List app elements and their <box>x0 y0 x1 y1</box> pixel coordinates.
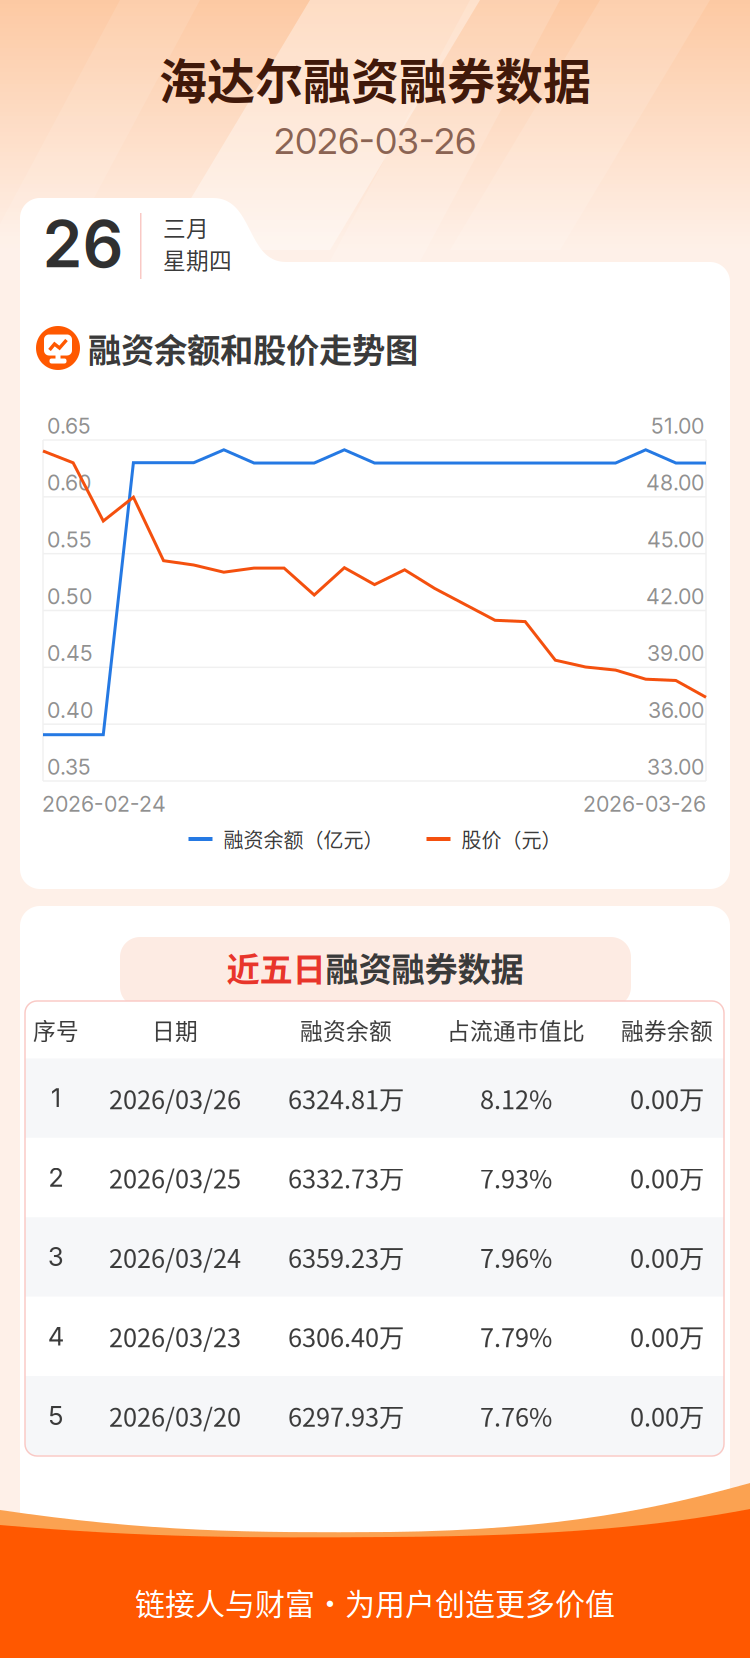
staticText: 0.35 <box>47 754 91 780</box>
staticText: 2026-02-24 <box>42 791 166 817</box>
staticText: 4 <box>48 1321 64 1352</box>
staticText: 6332.73万 <box>288 1159 404 1196</box>
staticText: 3 <box>48 1242 64 1272</box>
staticText: 占流通市值比 <box>447 1013 585 1046</box>
staticText: 26 <box>42 205 123 283</box>
staticText: 39.00 <box>647 640 704 666</box>
staticText: 0.00万 <box>630 1239 704 1275</box>
staticText: 5 <box>48 1400 63 1431</box>
staticText: 33.00 <box>647 754 704 780</box>
staticText: 0.00万 <box>630 1080 704 1116</box>
staticText: 2026/03/25 <box>109 1159 241 1196</box>
staticText: 股价（元） <box>461 824 561 853</box>
staticText: 6297.93万 <box>288 1397 404 1434</box>
staticText: 融资余额 <box>300 1013 392 1046</box>
staticText: 8.12% <box>480 1080 552 1116</box>
staticText: 0.50 <box>47 584 92 609</box>
staticText: 6306.40万 <box>288 1318 404 1355</box>
staticText: 42.00 <box>646 584 704 609</box>
staticText: 三月 <box>163 211 209 243</box>
staticText: 6359.23万 <box>288 1239 404 1275</box>
staticText: 2 <box>48 1162 63 1193</box>
staticText: 0.00万 <box>630 1397 704 1434</box>
staticText: 45.00 <box>647 527 704 553</box>
staticText: 0.65 <box>47 413 91 439</box>
staticText: 0.40 <box>47 697 93 723</box>
staticText: 近五日 <box>226 943 325 991</box>
staticText: 0.45 <box>47 640 93 666</box>
staticText: 2026/03/20 <box>109 1397 241 1434</box>
staticText: 1 <box>51 1083 61 1113</box>
staticText: 融资余额（亿元） <box>223 824 383 853</box>
staticText: 0.00万 <box>630 1159 704 1196</box>
staticText: 链接人与财富·为用户创造更多价值 <box>135 1580 615 1624</box>
staticText: 2026/03/24 <box>109 1239 241 1275</box>
staticText: 0.60 <box>47 470 91 496</box>
staticText: 融券余额 <box>621 1013 713 1046</box>
staticText: 2026/03/23 <box>109 1318 241 1355</box>
staticText: 36.00 <box>648 697 704 723</box>
staticText: 海达尔融资融券数据 <box>159 43 591 113</box>
staticText: 7.93% <box>480 1159 552 1196</box>
staticText: 48.00 <box>646 470 704 496</box>
staticText: 2026-03-26 <box>274 119 476 163</box>
staticText: 序号 <box>33 1013 79 1046</box>
staticText: 2026-03-26 <box>583 791 706 817</box>
staticText: 7.79% <box>480 1318 552 1355</box>
staticText: 融资余额和股价走势图 <box>88 324 418 372</box>
staticText: 2026/03/26 <box>109 1080 241 1116</box>
staticText: 星期四 <box>163 243 232 275</box>
staticText: 0.00万 <box>630 1318 704 1355</box>
staticText: 7.76% <box>480 1397 552 1434</box>
staticText: 0.55 <box>47 527 92 553</box>
staticText: 51.00 <box>651 413 704 439</box>
staticText: 融资融券数据 <box>325 943 523 991</box>
staticText: 7.96% <box>480 1239 552 1275</box>
staticText: 日期 <box>152 1013 198 1046</box>
staticText: 6324.81万 <box>288 1080 404 1116</box>
